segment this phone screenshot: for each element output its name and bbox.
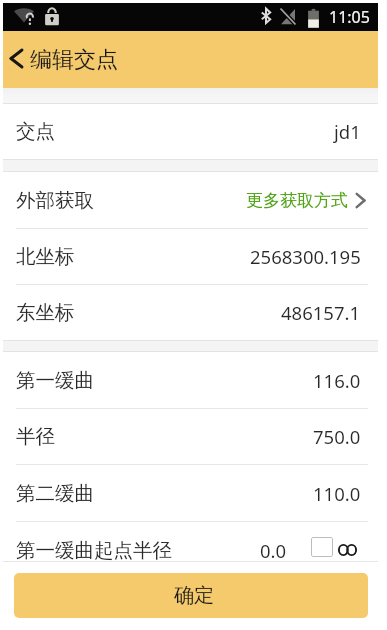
button[interactable]: 确定 [14, 573, 368, 618]
staticText: 确定 [174, 583, 214, 608]
staticText: 750.0 [313, 424, 361, 449]
staticText: 第一缓曲起点半径 [16, 538, 172, 562]
other: Back [11, 50, 22, 67]
staticText: 编辑交点 [30, 46, 118, 74]
button[interactable]: 东坐标 [3, 285, 378, 340]
button[interactable]: 第一缓曲起点半径 [3, 522, 378, 562]
staticText: 东坐标 [16, 300, 75, 325]
button[interactable]: Back [3, 31, 128, 88]
button[interactable]: 交点 [3, 104, 378, 159]
staticText: 2568300.195 [250, 244, 361, 269]
button[interactable]: 半径 [3, 409, 378, 464]
staticText: 110.0 [313, 481, 361, 506]
staticText: 北坐标 [16, 244, 75, 269]
staticText: 交点 [16, 119, 55, 144]
staticText: 第一缓曲 [16, 368, 94, 393]
staticText: 116.0 [313, 368, 361, 393]
staticText: 11:05 [329, 6, 370, 28]
staticText: 0.0 [260, 538, 287, 562]
other: Infinity [338, 544, 357, 556]
staticText: 第二缓曲 [16, 481, 94, 506]
staticText: jd1 [334, 119, 361, 144]
button[interactable]: 第二缓曲 [3, 465, 378, 521]
staticText: 486157.1 [281, 300, 361, 325]
button[interactable]: Infinite radius [311, 537, 333, 557]
staticText: 更多获取方式 [246, 190, 348, 211]
button[interactable]: 第一缓曲 [3, 352, 378, 408]
button[interactable]: 外部获取 [3, 172, 378, 228]
button[interactable]: 北坐标 [3, 229, 378, 284]
staticText: 外部获取 [16, 188, 94, 213]
staticText: 半径 [16, 424, 55, 449]
